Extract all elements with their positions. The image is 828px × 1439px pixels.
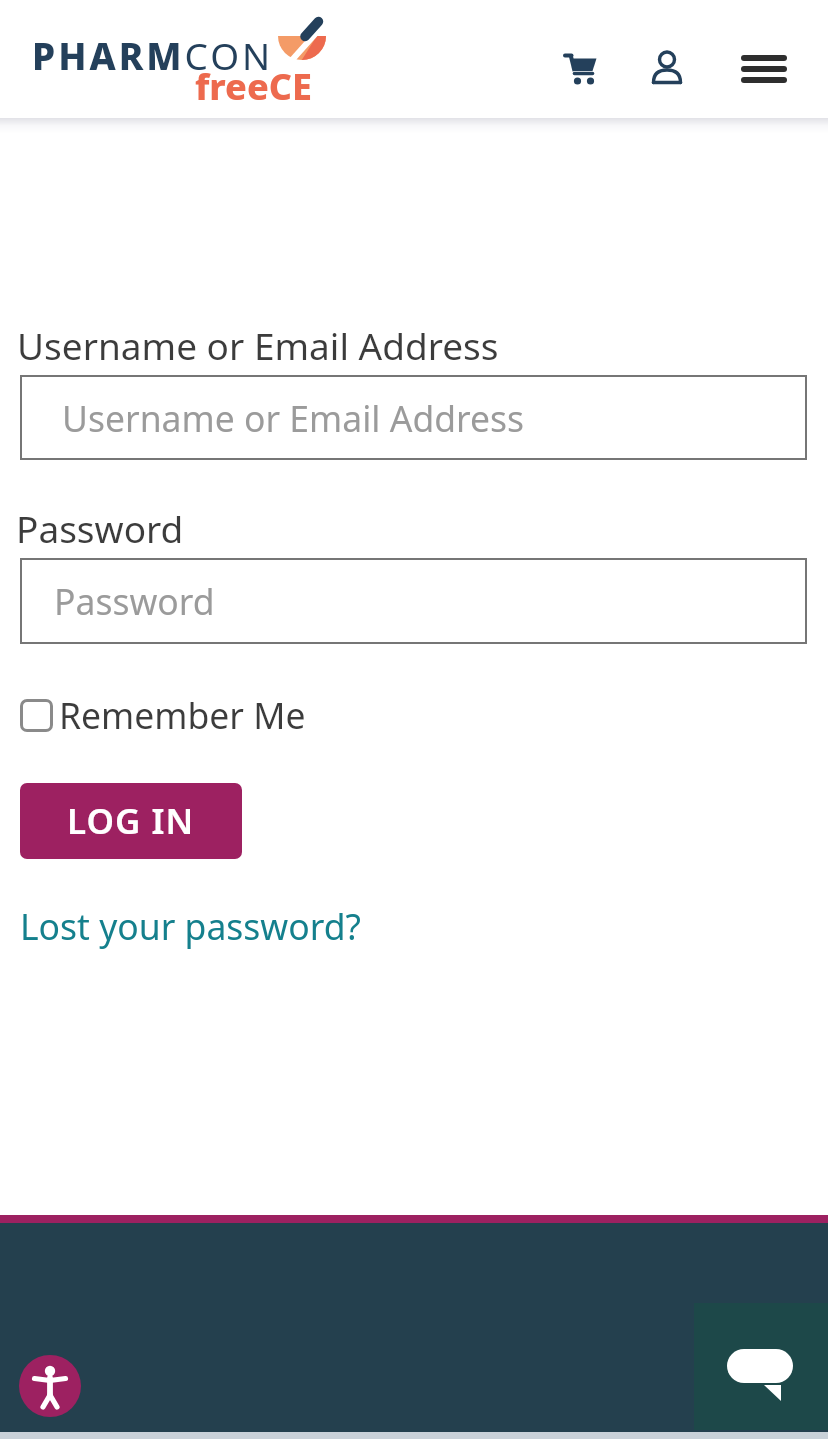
button[interactable]: Lost your password? — [20, 902, 361, 950]
staticText: Remember Me — [59, 691, 306, 737]
staticText: PHARMCON — [32, 30, 274, 80]
button[interactable]: Username or Email Address — [20, 375, 807, 460]
button[interactable] — [741, 55, 787, 85]
staticText: freeCE — [195, 62, 313, 111]
button[interactable] — [694, 1303, 828, 1430]
button[interactable] — [650, 50, 684, 84]
button[interactable]: Remember Me — [20, 691, 310, 737]
button[interactable] — [564, 52, 600, 88]
button[interactable] — [19, 1355, 81, 1417]
staticText: Username or Email Address — [62, 394, 525, 442]
button[interactable]: LOG IN — [20, 783, 242, 859]
staticText: Username or Email Address — [17, 320, 499, 370]
button[interactable]: Password — [20, 558, 807, 644]
staticText: LOG IN — [67, 797, 195, 845]
staticText: Password — [16, 503, 184, 553]
staticText: Password — [54, 577, 215, 625]
